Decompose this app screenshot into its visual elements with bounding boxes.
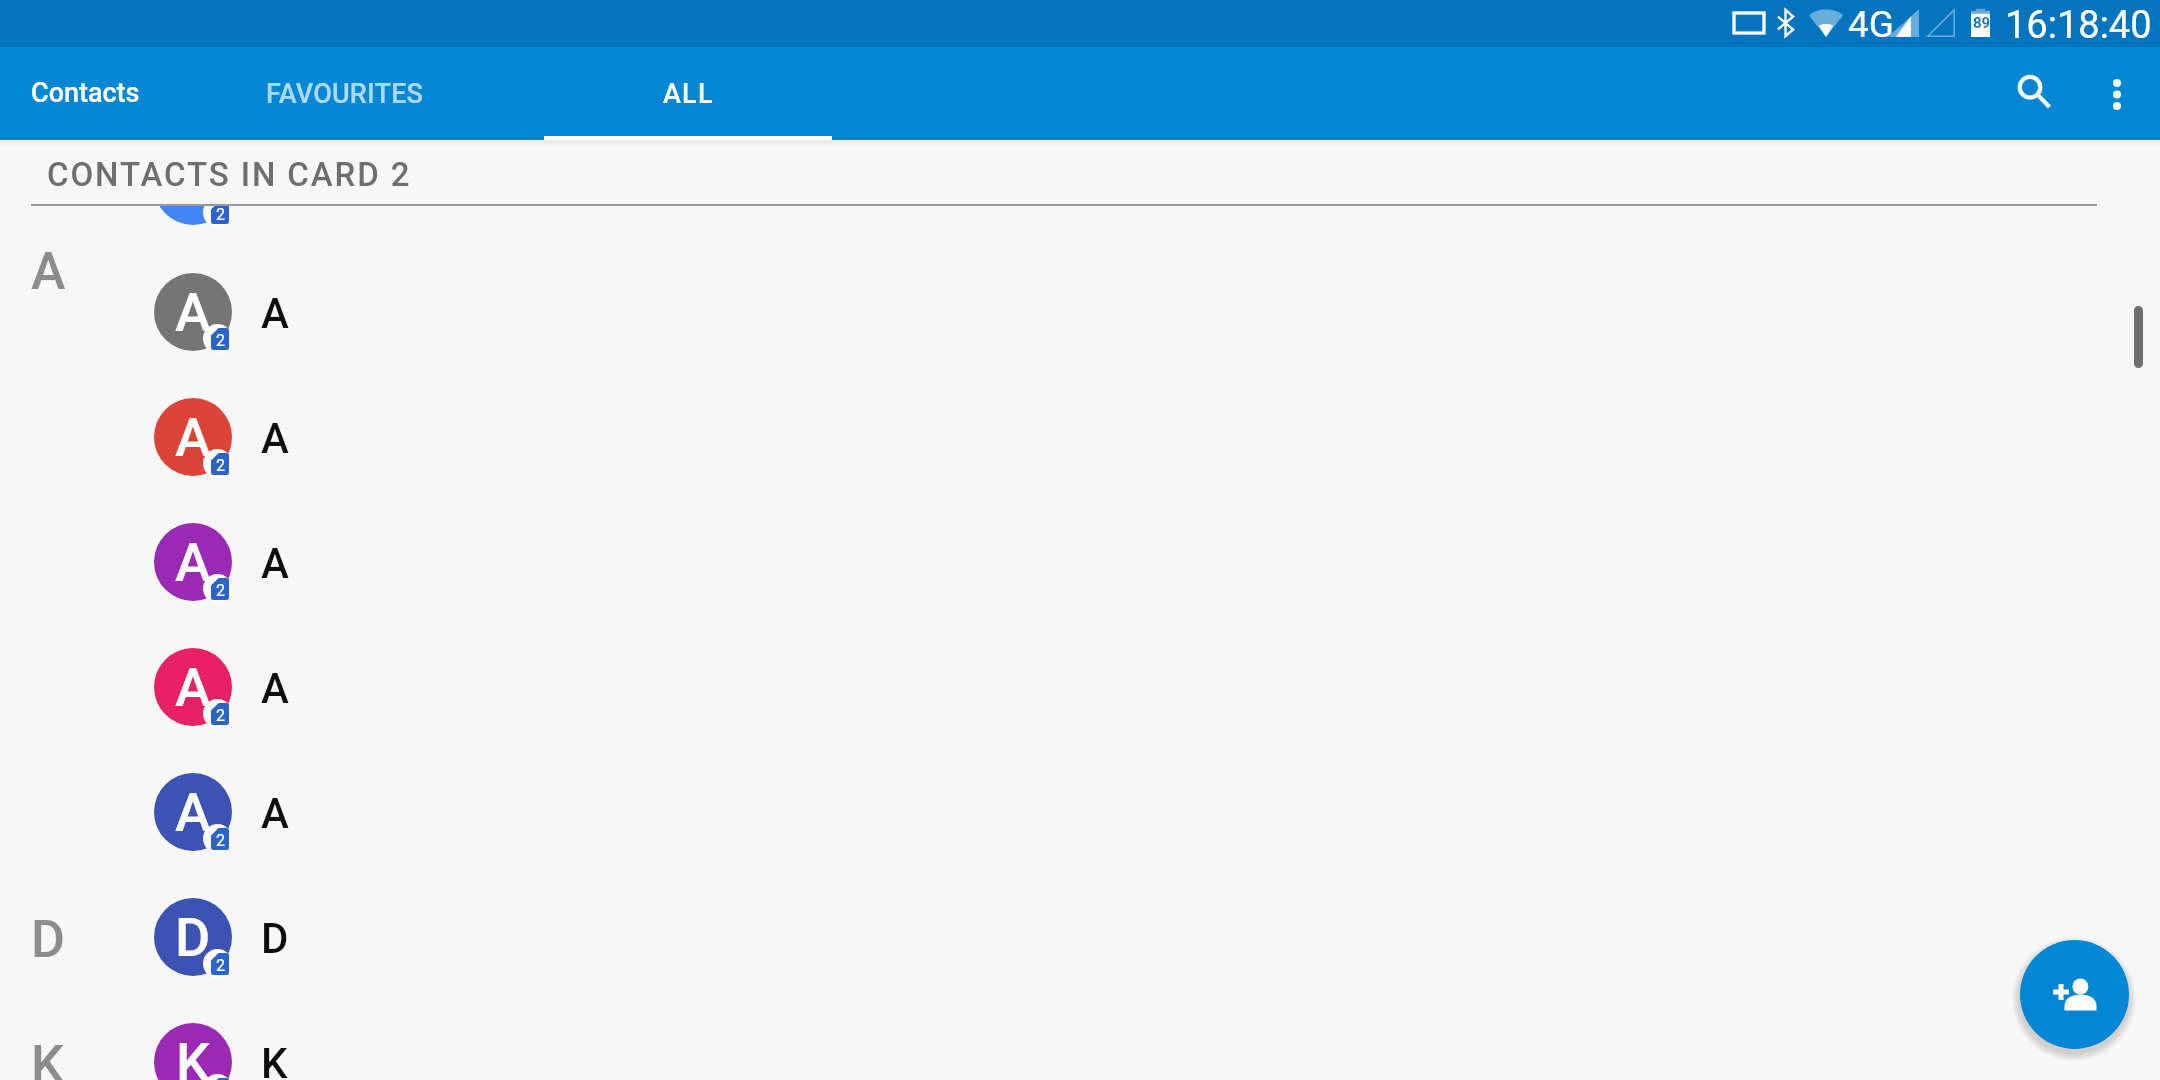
staticText: A <box>261 539 289 588</box>
staticText: K <box>31 1034 64 1080</box>
staticText: Contacts <box>31 77 140 109</box>
staticText: 89 <box>1973 14 1991 32</box>
staticText: CONTACTS IN CARD 2 <box>47 155 412 194</box>
button[interactable]: More options <box>2084 61 2150 127</box>
staticText: K <box>261 1039 288 1080</box>
staticText: ALL <box>663 78 714 110</box>
staticText: 2 <box>216 831 225 850</box>
staticText: 2 <box>216 331 225 350</box>
button[interactable]: Add contact <box>2020 940 2129 1049</box>
button[interactable] <box>0 625 2160 750</box>
button[interactable] <box>0 500 2160 625</box>
staticText: A <box>261 664 289 713</box>
button[interactable]: Search <box>1999 58 2071 130</box>
staticText: 2 <box>216 581 225 600</box>
staticText: D <box>261 914 289 963</box>
staticText: A <box>175 656 211 719</box>
staticText: A <box>175 531 211 594</box>
button[interactable] <box>0 1000 2160 1080</box>
button[interactable] <box>0 875 2160 1000</box>
staticText: 2 <box>216 205 225 224</box>
staticText: FAVOURITES <box>266 78 424 110</box>
button[interactable]: ALL <box>544 47 832 140</box>
staticText: 16:18:40 <box>2005 3 2152 48</box>
staticText: D <box>31 909 65 970</box>
staticText: 2 <box>216 956 225 975</box>
button[interactable] <box>0 750 2160 875</box>
staticText: 2 <box>216 706 225 725</box>
staticText: K <box>176 1031 211 1080</box>
staticText: A <box>175 281 211 344</box>
staticText: A <box>175 781 211 844</box>
staticText: A <box>261 414 289 463</box>
staticText: A <box>261 789 289 838</box>
staticText: 4G <box>1848 3 1894 46</box>
staticText: D <box>175 906 211 969</box>
button[interactable] <box>0 250 2160 375</box>
staticText: A <box>261 289 289 338</box>
staticText: A <box>175 406 211 469</box>
button[interactable]: FAVOURITES <box>201 47 489 140</box>
staticText: 2 <box>216 456 225 475</box>
staticText: A <box>31 241 66 302</box>
button[interactable] <box>0 375 2160 500</box>
